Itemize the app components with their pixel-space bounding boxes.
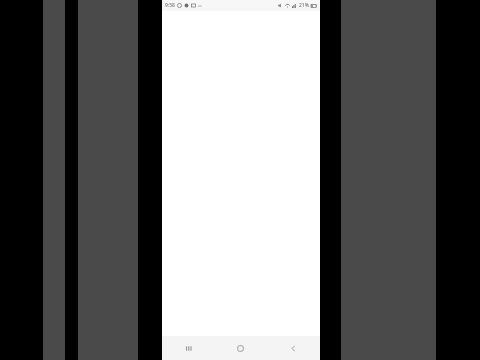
- button[interactable]: Back: [267, 336, 320, 360]
- staticText: 21%: [299, 2, 309, 9]
- button[interactable]: Home: [214, 336, 267, 360]
- button[interactable]: Recent apps: [162, 336, 214, 360]
- staticText: 9:58: [165, 2, 175, 9]
